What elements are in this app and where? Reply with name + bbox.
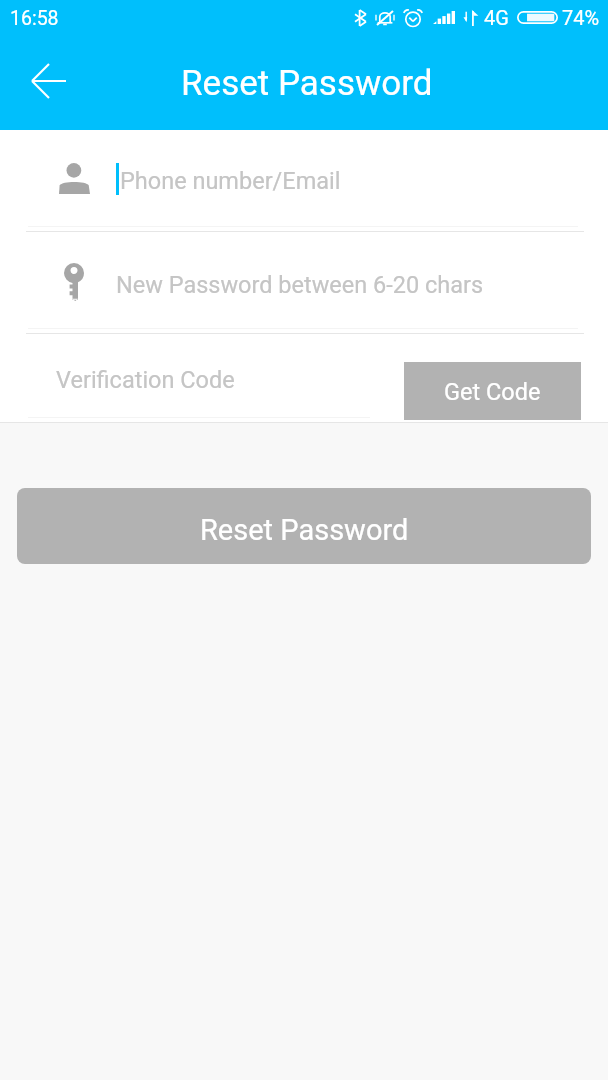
staticText: Reset Password: [181, 63, 433, 104]
staticText: New Password between 6-20 chars: [116, 271, 484, 299]
staticText: 4G: [484, 6, 509, 29]
button[interactable]: Back: [23, 55, 75, 107]
staticText: Verification Code: [56, 366, 235, 394]
staticText: Phone number/Email: [120, 167, 341, 195]
staticText: Get Code: [444, 378, 541, 406]
button[interactable]: Verification Code: [0, 331, 380, 418]
staticText: 74%: [562, 6, 600, 29]
button[interactable]: New Password between 6-20 chars: [0, 227, 608, 330]
staticText: 16:58: [10, 7, 59, 30]
button[interactable]: Get Code: [404, 362, 581, 420]
staticText: Reset Password: [200, 513, 409, 547]
button[interactable]: Phone number/Email: [0, 130, 608, 227]
button[interactable]: Reset Password: [17, 488, 591, 564]
